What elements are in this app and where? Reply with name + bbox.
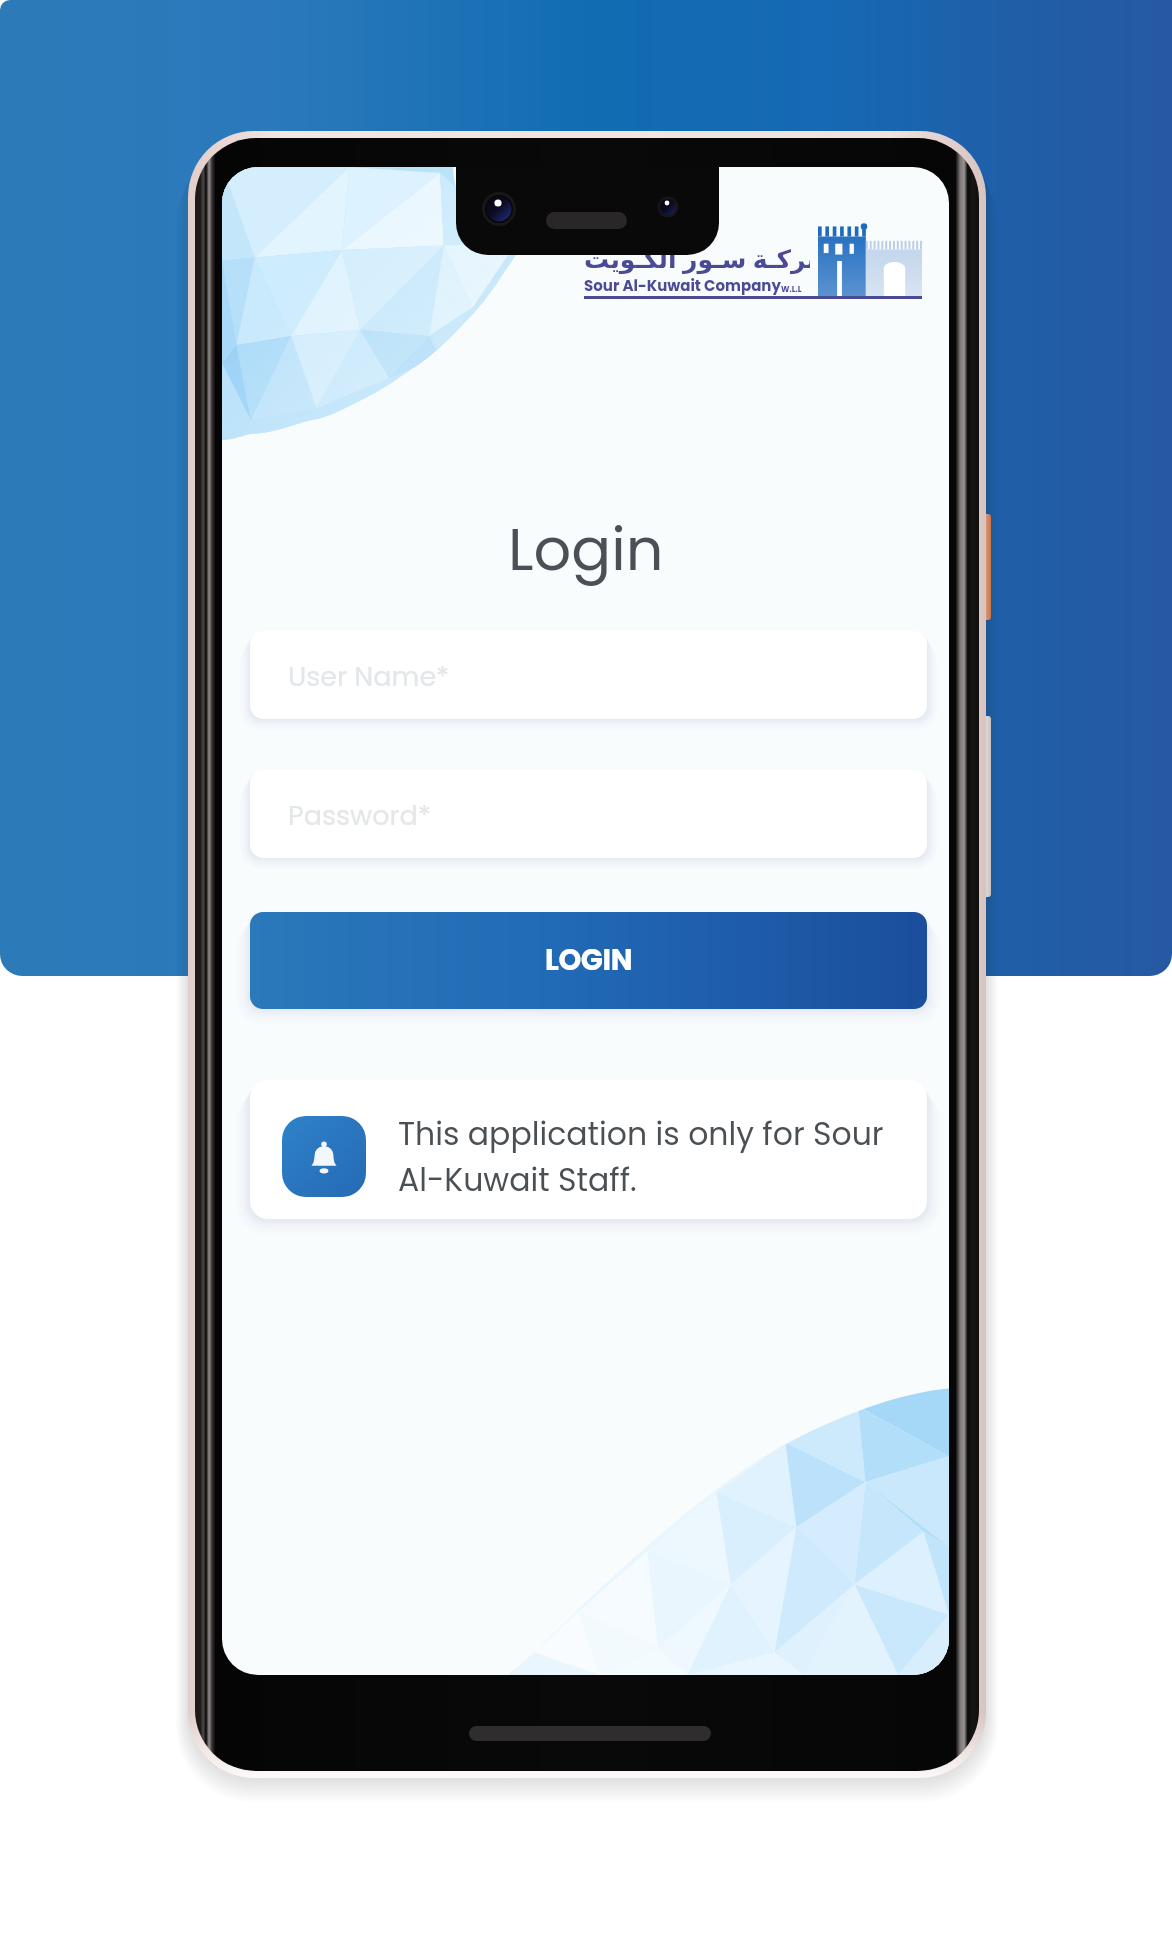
staticText: شركـة سـور الكـويت: [584, 241, 810, 275]
button[interactable]: User Name*: [250, 631, 927, 719]
button[interactable]: Password*: [250, 770, 927, 858]
staticText: User Name*: [288, 658, 450, 696]
staticText: Password*: [288, 797, 431, 835]
other: Notification: [282, 1116, 366, 1197]
staticText: Login: [508, 508, 664, 591]
staticText: Sour Al-Kuwait Company: [584, 275, 781, 296]
button[interactable]: Notification: [250, 1080, 927, 1219]
button[interactable]: LOGIN: [250, 912, 927, 1009]
staticText: W.L.L: [781, 284, 802, 295]
staticText: This application is only for Sour Al-Kuw…: [398, 1112, 913, 1202]
staticText: LOGIN: [545, 940, 633, 981]
